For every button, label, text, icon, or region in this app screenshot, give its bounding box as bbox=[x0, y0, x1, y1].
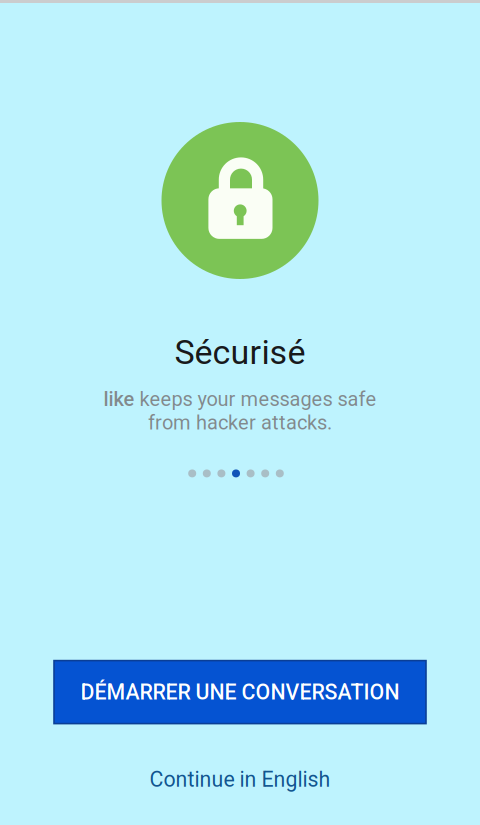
button[interactable]: Continue in English bbox=[0, 757, 480, 802]
staticText: Sécurisé bbox=[174, 332, 305, 372]
staticText: DÉMARRER UNE CONVERSATION bbox=[80, 680, 399, 705]
button[interactable]: DÉMARRER UNE CONVERSATION bbox=[54, 661, 426, 724]
staticText: like keeps your messages safe bbox=[103, 387, 376, 411]
staticText: Continue in English bbox=[149, 767, 330, 792]
staticText: from hacker attacks. bbox=[148, 411, 332, 434]
